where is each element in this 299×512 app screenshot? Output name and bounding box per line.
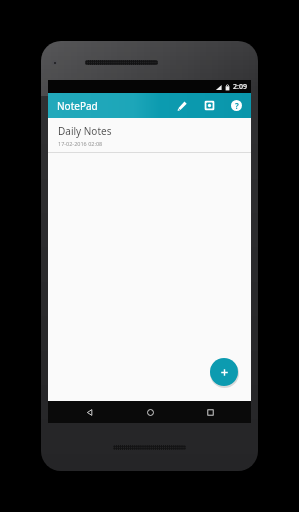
- button[interactable]: Add note: [210, 358, 238, 386]
- button[interactable]: Home: [130, 401, 170, 423]
- button[interactable]: Back: [69, 401, 109, 423]
- button[interactable]: Screenshot: [200, 96, 219, 115]
- staticText: ?: [235, 100, 239, 111]
- staticText: NotePad: [57, 99, 98, 113]
- button[interactable]: Help: [227, 96, 246, 115]
- button[interactable]: Daily Notes: [48, 118, 251, 153]
- staticText: Daily Notes: [58, 124, 112, 138]
- staticText: 17-02-2016 02:08: [58, 140, 103, 147]
- button[interactable]: Recent apps: [190, 401, 230, 423]
- staticText: 2:09: [233, 82, 247, 92]
- button[interactable]: Edit: [173, 96, 192, 115]
